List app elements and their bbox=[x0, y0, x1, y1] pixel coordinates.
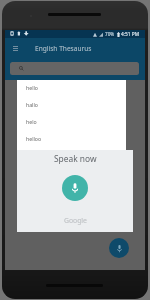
staticText: 70% bbox=[105, 31, 115, 37]
staticText: hallo bbox=[26, 101, 38, 108]
button[interactable]: hallo bbox=[17, 97, 126, 114]
staticText: hello bbox=[26, 84, 38, 91]
staticText: Google bbox=[64, 216, 87, 225]
button[interactable]: hello bbox=[17, 80, 126, 97]
staticText: helloo bbox=[26, 135, 42, 142]
staticText: Speak now bbox=[54, 153, 97, 164]
button[interactable]: Voice search bbox=[109, 238, 129, 258]
staticText: 4:51 PM bbox=[121, 31, 140, 38]
button[interactable]: helloo bbox=[17, 131, 126, 148]
button[interactable]: Open navigation drawer bbox=[9, 42, 22, 55]
staticText: English Thesaurus bbox=[35, 44, 92, 53]
staticText: helo bbox=[26, 118, 37, 125]
button[interactable]: Microphone bbox=[62, 175, 88, 201]
button[interactable]: helo bbox=[17, 114, 126, 131]
button[interactable] bbox=[10, 62, 139, 75]
